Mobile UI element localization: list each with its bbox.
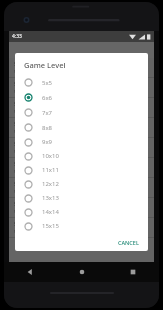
staticText: 6x6 <box>42 94 53 102</box>
staticText: Summary text here <box>14 109 50 114</box>
staticText: 7x7 <box>42 109 53 117</box>
button[interactable]: 5x5 <box>15 75 148 90</box>
button[interactable]: 14x14 <box>15 205 148 219</box>
button[interactable]: Home <box>74 264 90 280</box>
staticText: Setting item <box>14 121 43 128</box>
button[interactable]: Recent apps <box>125 264 141 280</box>
staticText: Summary text here <box>14 149 50 154</box>
staticText: Setting item <box>14 101 43 108</box>
button[interactable]: Back <box>22 264 38 280</box>
button[interactable]: 7x7 <box>15 105 148 120</box>
staticText: Summary text here <box>14 129 50 134</box>
button[interactable]: 9x9 <box>15 135 148 149</box>
button[interactable]: 10x10 <box>15 149 148 163</box>
staticText: Setting item <box>14 161 43 168</box>
staticText: 10x10 <box>42 152 59 160</box>
button[interactable]: 11x11 <box>15 163 148 177</box>
staticText: 9x9 <box>42 138 53 146</box>
staticText: Game Level <box>24 60 66 70</box>
staticText: Setting item <box>14 201 43 208</box>
staticText: Setting item <box>14 181 43 188</box>
button[interactable]: 12x12 <box>15 177 148 191</box>
staticText: Summary text here <box>14 189 50 194</box>
staticText: 12x12 <box>42 180 59 188</box>
staticText: Summary text here <box>14 169 50 174</box>
staticText: Setting item <box>14 141 43 148</box>
staticText: Summary text here <box>14 229 50 234</box>
button[interactable]: 8x8 <box>15 120 148 135</box>
button[interactable]: CANCEL <box>114 236 143 249</box>
staticText: Setting item <box>14 221 43 228</box>
staticText: 15x15 <box>42 222 59 230</box>
button[interactable]: 15x15 <box>15 219 148 233</box>
staticText: Summary text here <box>14 89 50 94</box>
staticText: 4:33 <box>12 33 22 40</box>
button[interactable]: 13x13 <box>15 191 148 205</box>
staticText: Summary text here <box>14 209 50 214</box>
button[interactable]: 6x6 <box>15 90 148 105</box>
staticText: Setting item <box>14 81 43 88</box>
staticText: 13x13 <box>42 194 59 202</box>
staticText: 8x8 <box>42 124 53 132</box>
staticText: Summary text here <box>14 69 50 74</box>
staticText: 5x5 <box>42 79 53 87</box>
staticText: Setting item <box>14 61 43 68</box>
staticText: 11x11 <box>42 166 59 174</box>
staticText: CANCEL <box>118 239 139 246</box>
staticText: 14x14 <box>42 208 59 216</box>
